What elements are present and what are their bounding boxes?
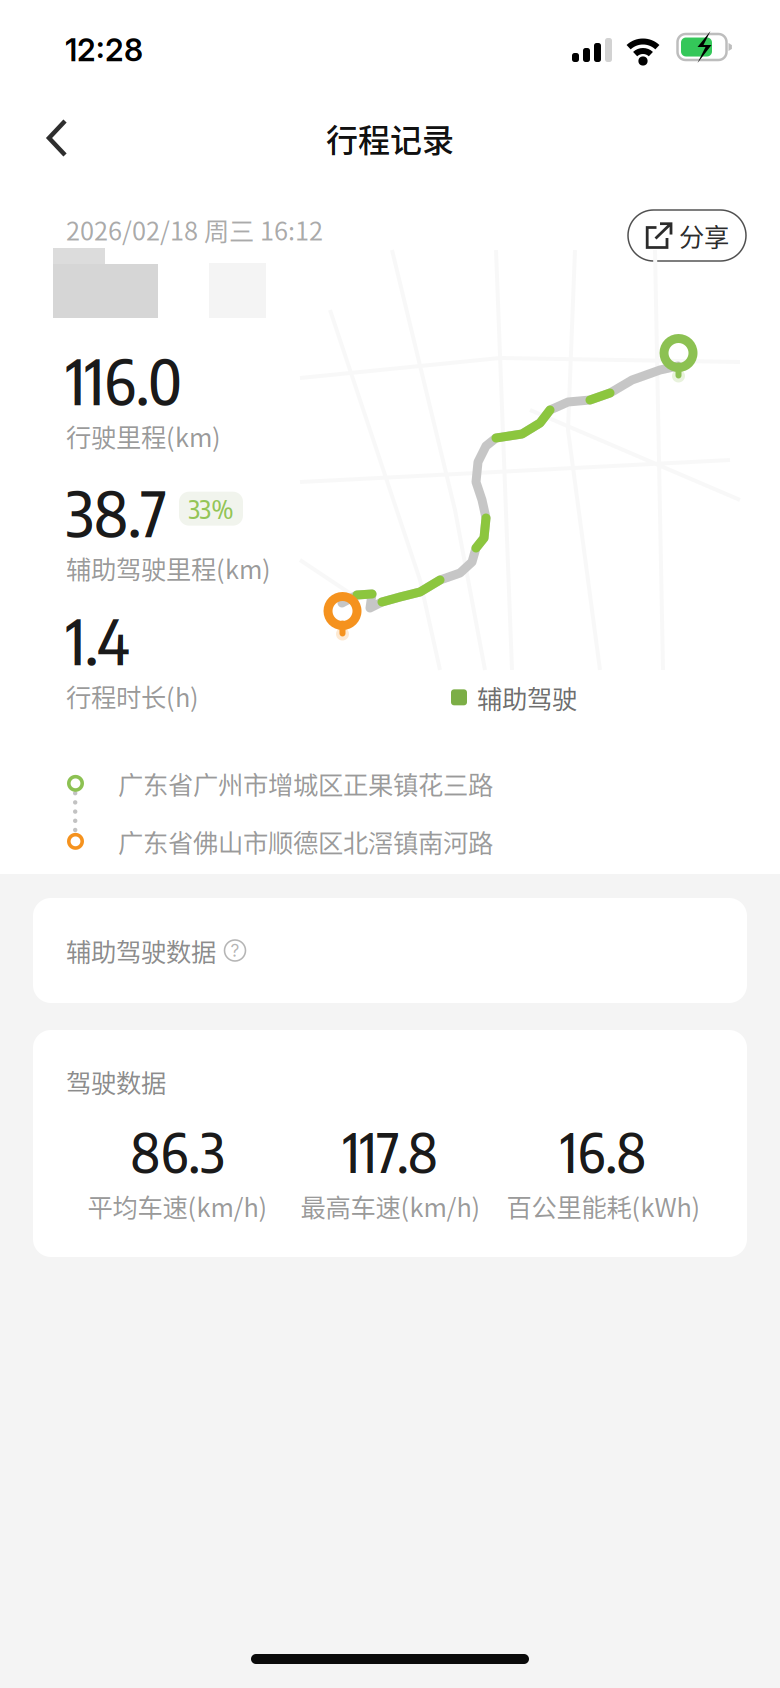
staticText: 33% bbox=[188, 493, 233, 524]
staticText: 辅助驾驶数据 bbox=[66, 932, 216, 969]
staticText: 1.4 bbox=[66, 602, 130, 679]
staticText: 117.8 bbox=[343, 1118, 438, 1185]
staticText: 分享 bbox=[679, 217, 729, 254]
staticText: 12:28 bbox=[65, 31, 143, 68]
staticText: 最高车速(km/h) bbox=[300, 1188, 480, 1224]
button[interactable]: 辅助驾驶数据 bbox=[33, 898, 747, 1003]
button[interactable]: 分享 bbox=[628, 210, 746, 261]
staticText: 86.3 bbox=[130, 1118, 224, 1185]
staticText: 16.8 bbox=[560, 1118, 646, 1185]
staticText: 116.0 bbox=[66, 342, 182, 419]
staticText: 行程时长(h) bbox=[66, 678, 199, 714]
staticText: 辅助驾驶 bbox=[477, 679, 577, 716]
staticText: 广东省佛山市顺德区北滘镇南河路 bbox=[118, 823, 493, 860]
staticText: 行驶里程(km) bbox=[66, 418, 221, 454]
staticText: 2026/02/18 周三 16:12 bbox=[66, 211, 323, 248]
staticText: 平均车速(km/h) bbox=[87, 1188, 267, 1224]
staticText: 38.7 bbox=[66, 474, 167, 551]
staticText: 辅助驾驶里程(km) bbox=[66, 550, 271, 586]
staticText: ? bbox=[230, 940, 239, 961]
staticText: 行程记录 bbox=[326, 115, 454, 161]
button[interactable]: Back bbox=[0, 93, 94, 183]
staticText: 驾驶数据 bbox=[66, 1063, 166, 1100]
staticText: 百公里能耗(kWh) bbox=[506, 1188, 700, 1224]
staticText: 广东省广州市增城区正果镇花三路 bbox=[118, 765, 493, 802]
